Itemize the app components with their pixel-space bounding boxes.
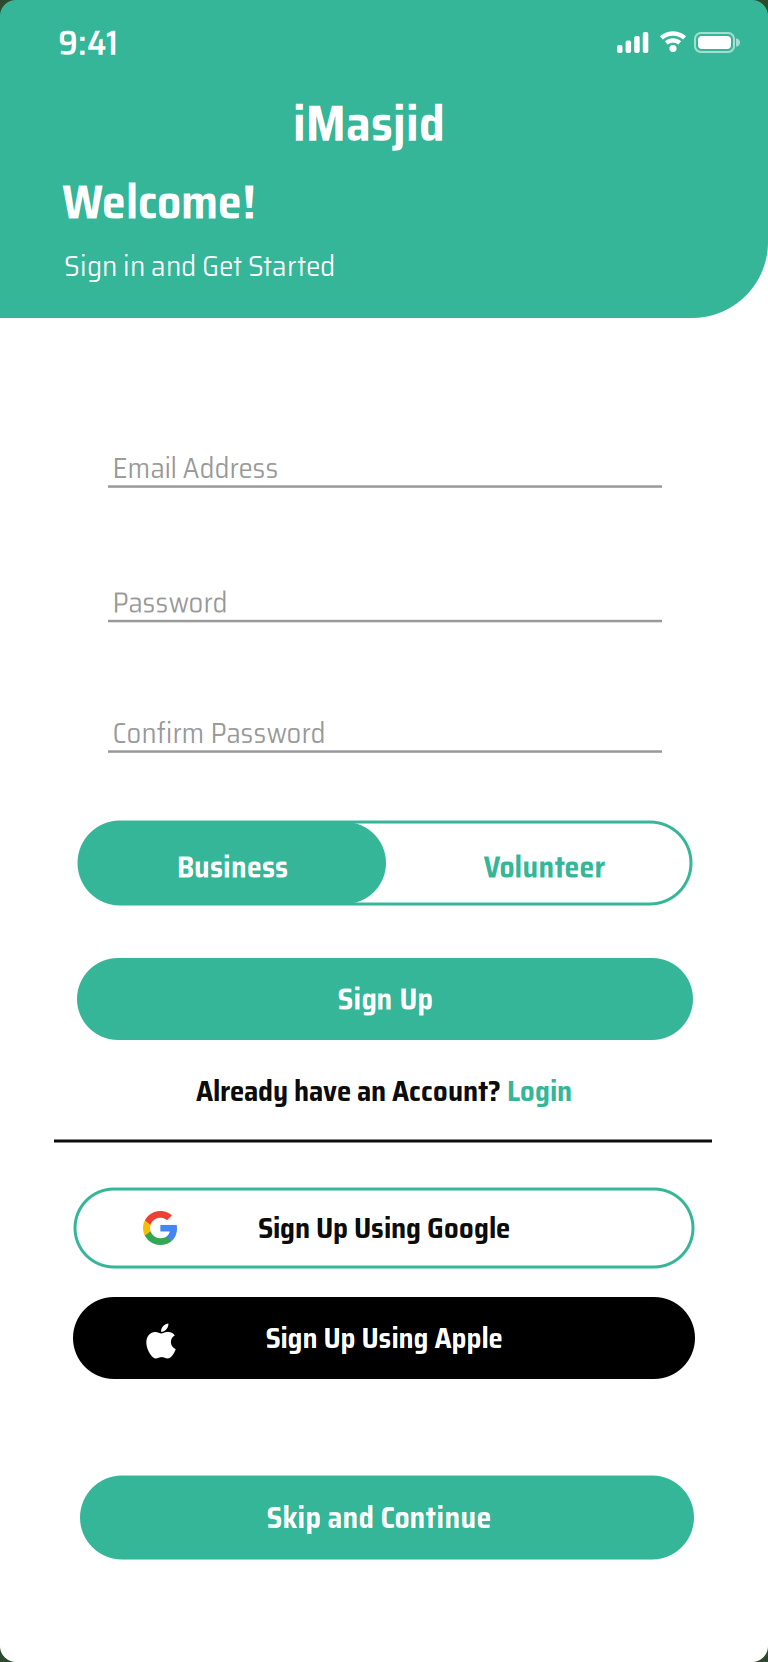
button[interactable]: Login (507, 1068, 572, 1114)
button[interactable]: Sign Up (77, 958, 693, 1040)
staticText: Sign Up Using Apple (265, 1315, 502, 1361)
button[interactable]: Volunteer (386, 822, 691, 904)
staticText: Skip and Continue (266, 1494, 491, 1541)
button[interactable]: Skip and Continue (80, 1475, 694, 1559)
staticText: Sign Up Using Google (258, 1205, 510, 1251)
button[interactable]: Password (108, 570, 662, 624)
staticText: 9:41 (58, 15, 118, 70)
staticText: Login (507, 1068, 572, 1114)
staticText: Sign in and Get Started (64, 242, 335, 289)
staticText: Sign Up (337, 975, 432, 1023)
button[interactable]: Business (79, 822, 386, 904)
staticText: Email Address (112, 445, 278, 491)
staticText: Confirm Password (112, 710, 325, 756)
staticText: Welcome! (62, 164, 256, 240)
staticText: Already have an Account? (196, 1068, 507, 1114)
staticText: Volunteer (483, 843, 605, 891)
staticText: iMasjid (293, 84, 445, 163)
button[interactable]: Sign Up Using Apple (73, 1297, 695, 1379)
staticText: Password (112, 579, 227, 625)
button[interactable]: Confirm Password (108, 701, 662, 755)
staticText: Business (177, 843, 288, 891)
button[interactable]: Sign Up Using Google (75, 1189, 693, 1267)
button[interactable]: Email Address (108, 436, 662, 490)
